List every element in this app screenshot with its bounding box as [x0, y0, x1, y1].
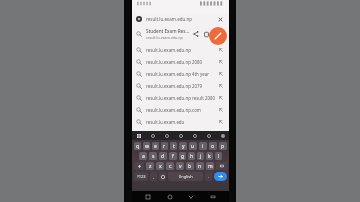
staticText: result.lu.exam.edu.np — [146, 47, 215, 53]
button[interactable]: o — [209, 142, 217, 150]
button[interactable]: Emoji — [159, 172, 166, 181]
staticText: r — [163, 143, 166, 150]
button[interactable]: Settings — [219, 132, 226, 139]
staticText: result.lu.exam.edu.np.com — [146, 107, 215, 113]
button[interactable]: Student Exam Res... — [132, 24, 229, 44]
button[interactable]: result.lu.exam.edu — [132, 116, 229, 128]
button[interactable]: i — [199, 142, 207, 150]
button[interactable]: result.lu.exam.edu.np 4th year — [132, 68, 229, 80]
button[interactable]: h — [188, 152, 195, 160]
staticText: t — [173, 143, 175, 150]
button[interactable]: u — [189, 142, 197, 150]
staticText: . — [208, 174, 210, 179]
staticText: u — [191, 143, 195, 150]
button[interactable]: m — [206, 162, 214, 170]
button[interactable]: Copy — [201, 29, 211, 39]
button[interactable]: . — [205, 172, 212, 181]
button[interactable]: Menu — [135, 132, 142, 139]
staticText: result.lu.exam.edu.np 4th year — [146, 71, 215, 77]
button[interactable]: w — [143, 142, 150, 150]
button[interactable]: Recents — [143, 192, 153, 202]
button[interactable]: a — [139, 152, 147, 160]
staticText: l — [218, 153, 220, 160]
staticText: q — [136, 143, 140, 150]
staticText: a — [142, 153, 145, 160]
staticText: m — [208, 163, 213, 170]
button[interactable]: ?123 — [134, 172, 148, 181]
button[interactable]: Search — [214, 172, 227, 181]
staticText: result.lu.exam.edu — [146, 119, 215, 125]
button[interactable]: result.lu.exam.edu.np.com — [132, 104, 229, 116]
staticText: i — [202, 143, 204, 150]
staticText: result.lu.exam.edu.np 2080 — [146, 59, 215, 65]
button[interactable]: x — [156, 162, 164, 170]
button[interactable]: Shift — [134, 162, 144, 170]
button[interactable]: English — [168, 172, 203, 181]
button[interactable]: Backspace — [216, 162, 227, 170]
button[interactable]: b — [186, 162, 194, 170]
staticText: v — [179, 163, 182, 170]
button[interactable]: Back — [186, 192, 196, 202]
button[interactable]: d — [159, 152, 167, 160]
staticText: result.lu.exam.edu.np — [146, 35, 183, 40]
button[interactable]: n — [196, 162, 204, 170]
staticText: , — [153, 174, 155, 179]
button[interactable]: j — [197, 152, 204, 160]
button[interactable]: k — [206, 152, 213, 160]
button[interactable]: l — [215, 152, 222, 160]
button[interactable]: Keyboard tool — [177, 132, 184, 139]
button[interactable]: p — [219, 142, 227, 150]
button[interactable]: Hide keyboard — [208, 192, 218, 202]
staticText: n — [198, 163, 202, 170]
button[interactable]: result.lu.exam.edu.np 2079 — [132, 80, 229, 92]
button[interactable]: Keyboard tool — [191, 132, 198, 139]
staticText: o — [211, 143, 215, 150]
staticText: c — [169, 163, 172, 170]
button[interactable]: Edit search — [209, 27, 227, 45]
staticText: ?123 — [137, 174, 146, 179]
button[interactable]: result.lu.exam.edu.np 2080 — [132, 56, 229, 68]
button[interactable]: z — [146, 162, 154, 170]
staticText: result.lu.exam.edu.np result 2080 — [146, 95, 215, 101]
staticText: result.lu.exam.edu.np — [146, 16, 216, 22]
button[interactable]: q — [134, 142, 141, 150]
button[interactable]: result.lu.exam.edu.np result 2080 — [132, 92, 229, 104]
staticText: s — [152, 153, 155, 160]
button[interactable]: y — [179, 142, 187, 150]
staticText: x — [159, 163, 162, 170]
button[interactable]: c — [166, 162, 174, 170]
button[interactable]: Keyboard tool — [205, 132, 212, 139]
staticText: result.lu.exam.edu.np 2079 — [146, 83, 215, 89]
button[interactable]: Clear — [216, 15, 225, 24]
button[interactable]: Keyboard tool — [163, 132, 170, 139]
button[interactable]: r — [161, 142, 168, 150]
staticText: z — [149, 163, 152, 170]
staticText: f — [172, 153, 174, 160]
button[interactable]: Home — [165, 192, 175, 202]
staticText: g — [181, 153, 185, 160]
staticText: Student Exam Res... — [146, 28, 190, 34]
button[interactable]: s — [149, 152, 157, 160]
staticText: e — [154, 143, 157, 150]
staticText: b — [188, 163, 192, 170]
button[interactable]: e — [152, 142, 159, 150]
staticText: k — [208, 153, 211, 160]
button[interactable]: v — [176, 162, 184, 170]
button[interactable]: , — [150, 172, 157, 181]
staticText: y — [182, 143, 185, 150]
button[interactable]: result.lu.exam.edu.np — [132, 44, 229, 56]
staticText: w — [145, 143, 149, 150]
staticText: English — [179, 174, 193, 179]
button[interactable]: result.lu.exam.edu.np — [132, 14, 229, 24]
staticText: j — [200, 153, 202, 160]
button[interactable]: t — [170, 142, 177, 150]
button[interactable]: g — [179, 152, 186, 160]
staticText: d — [161, 153, 165, 160]
staticText: p — [221, 143, 225, 150]
button[interactable]: Share — [191, 29, 201, 39]
button[interactable]: f — [169, 152, 177, 160]
staticText: h — [190, 153, 194, 160]
button[interactable]: Keyboard tool — [149, 132, 156, 139]
